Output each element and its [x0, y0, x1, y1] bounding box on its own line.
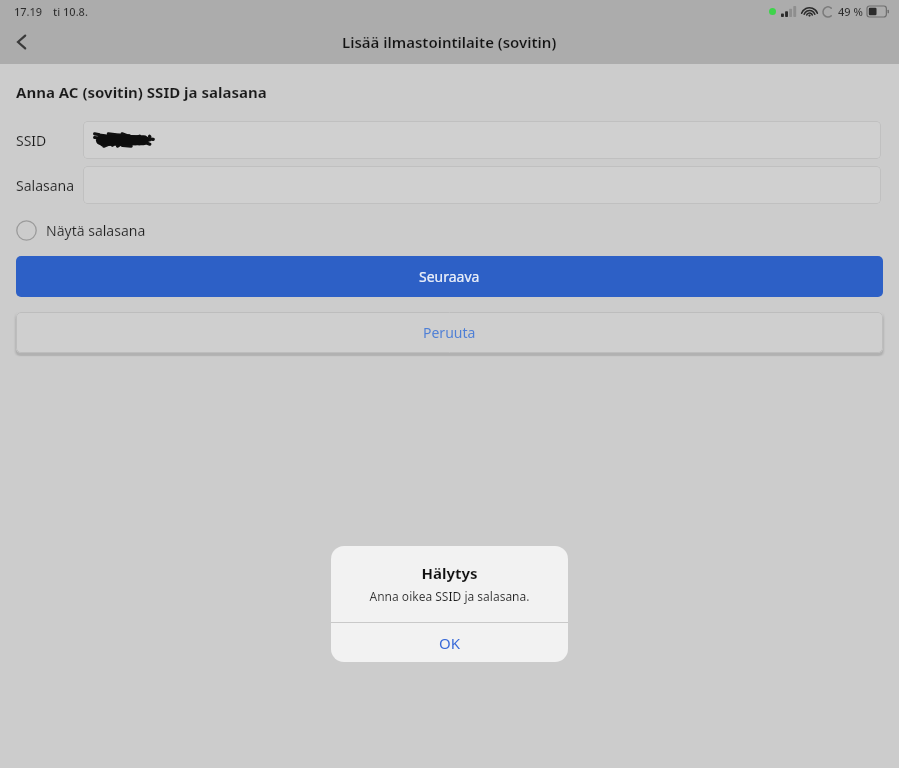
staticText: Hälytys [331, 563, 568, 583]
staticText: 17.19 [14, 4, 43, 19]
button[interactable]: Näytä salasana [16, 215, 146, 245]
staticText: Seuraava [419, 267, 480, 286]
button[interactable]: Back [0, 20, 44, 64]
staticText: Näytä salasana [46, 221, 146, 240]
staticText: SSID [16, 131, 47, 150]
staticText: OK [439, 633, 461, 653]
staticText: Lisää ilmastointilaite (sovitin) [342, 32, 557, 52]
button[interactable]: OK [331, 623, 568, 662]
staticText: 49 % [838, 4, 863, 19]
button[interactable] [83, 166, 881, 204]
button[interactable]: Peruuta [16, 312, 883, 353]
button[interactable]: Seuraava [16, 256, 883, 297]
staticText: ti 10.8. [53, 4, 88, 19]
staticText: Anna AC (sovitin) SSID ja salasana [16, 82, 267, 102]
staticText: Peruuta [423, 323, 476, 342]
staticText: Salasana [16, 176, 75, 195]
button[interactable] [83, 121, 881, 159]
staticText: Anna oikea SSID ja salasana. [343, 588, 556, 604]
